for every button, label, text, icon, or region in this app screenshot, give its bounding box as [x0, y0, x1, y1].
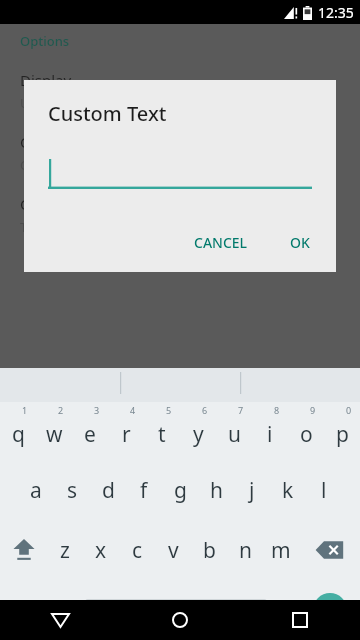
button[interactable]: n: [227, 520, 263, 580]
button[interactable]: a: [18, 461, 54, 520]
staticText: o: [300, 420, 313, 449]
staticText: 5: [166, 404, 172, 416]
button[interactable]: CANCEL: [186, 227, 256, 258]
button[interactable]: j: [234, 461, 270, 520]
button[interactable]: g: [162, 461, 198, 520]
button[interactable]: 1: [0, 402, 36, 461]
button[interactable]: c: [119, 520, 155, 580]
staticText: Choose accent: [20, 156, 109, 174]
staticText: g: [174, 476, 187, 505]
staticText: 2: [58, 404, 64, 416]
button[interactable]: s: [54, 461, 90, 520]
button[interactable]: 9: [288, 402, 324, 461]
button[interactable]: 8: [252, 402, 288, 461]
staticText: Type your custom text: [20, 218, 156, 236]
staticText: 0: [346, 404, 352, 416]
staticText: 6: [202, 404, 208, 416]
staticText: b: [203, 536, 216, 565]
button[interactable]: Custom Text: [0, 182, 360, 244]
button[interactable]: Display: [0, 58, 360, 120]
staticText: w: [46, 420, 63, 449]
button[interactable]: 2: [36, 402, 72, 461]
button[interactable]: m: [263, 520, 299, 580]
button[interactable]: Enter: [313, 593, 347, 627]
button[interactable]: OK: [282, 227, 318, 258]
staticText: 8: [274, 404, 280, 416]
staticText: 4: [130, 404, 136, 416]
button[interactable]: Home: [120, 600, 240, 640]
button[interactable]: [48, 159, 312, 189]
staticText: Custom Text: [48, 100, 167, 127]
button[interactable]: v: [155, 520, 191, 580]
button[interactable]: k: [270, 461, 306, 520]
button[interactable]: b: [191, 520, 227, 580]
staticText: z: [60, 536, 70, 565]
button[interactable]: 0: [324, 402, 360, 461]
staticText: f: [140, 476, 148, 505]
button[interactable]: x: [83, 520, 119, 580]
staticText: Custom Text: [20, 194, 108, 214]
staticText: d: [102, 476, 115, 505]
button[interactable]: .: [267, 580, 300, 640]
staticText: l: [321, 476, 327, 505]
staticText: a: [30, 476, 42, 505]
staticText: Colour: [20, 132, 67, 152]
button[interactable]: f: [126, 461, 162, 520]
button[interactable]: 7: [216, 402, 252, 461]
button[interactable]: ?123: [0, 580, 52, 640]
button[interactable]: Recents: [240, 600, 360, 640]
staticText: k: [282, 476, 294, 505]
staticText: y: [193, 420, 204, 449]
staticText: Options: [20, 32, 70, 50]
staticText: m: [271, 536, 291, 565]
staticText: t: [158, 420, 166, 449]
staticText: 7: [238, 404, 244, 416]
button[interactable]: 3: [72, 402, 108, 461]
staticText: n: [239, 536, 252, 565]
staticText: ,: [66, 602, 71, 624]
button[interactable]: 5: [144, 402, 180, 461]
staticText: 12:35: [318, 3, 354, 22]
staticText: h: [210, 476, 223, 505]
button[interactable]: Backspace: [299, 520, 360, 580]
staticText: CANCEL: [194, 233, 248, 252]
staticText: Display: [20, 70, 72, 90]
button[interactable]: ,: [52, 580, 85, 640]
staticText: i: [267, 420, 273, 449]
staticText: 9: [310, 404, 316, 416]
staticText: v: [168, 536, 179, 565]
button[interactable]: d: [90, 461, 126, 520]
staticText: u: [228, 420, 241, 449]
button[interactable]: l: [306, 461, 342, 520]
button[interactable]: Shift: [0, 520, 47, 580]
staticText: 1: [22, 404, 28, 416]
staticText: OK: [290, 233, 310, 252]
staticText: Use dark theme: [20, 94, 117, 112]
staticText: s: [67, 476, 78, 505]
staticText: 3: [94, 404, 100, 416]
button[interactable]: Back: [0, 600, 120, 640]
staticText: r: [122, 420, 131, 449]
staticText: j: [249, 476, 255, 505]
staticText: p: [336, 420, 349, 449]
button[interactable]: Colour: [0, 120, 360, 182]
staticText: c: [132, 536, 143, 565]
staticText: e: [84, 420, 96, 449]
button[interactable]: 6: [180, 402, 216, 461]
staticText: x: [95, 536, 107, 565]
button[interactable]: h: [198, 461, 234, 520]
button[interactable]: Space: [85, 599, 267, 621]
button[interactable]: z: [47, 520, 83, 580]
staticText: q: [12, 420, 25, 449]
button[interactable]: 4: [108, 402, 144, 461]
